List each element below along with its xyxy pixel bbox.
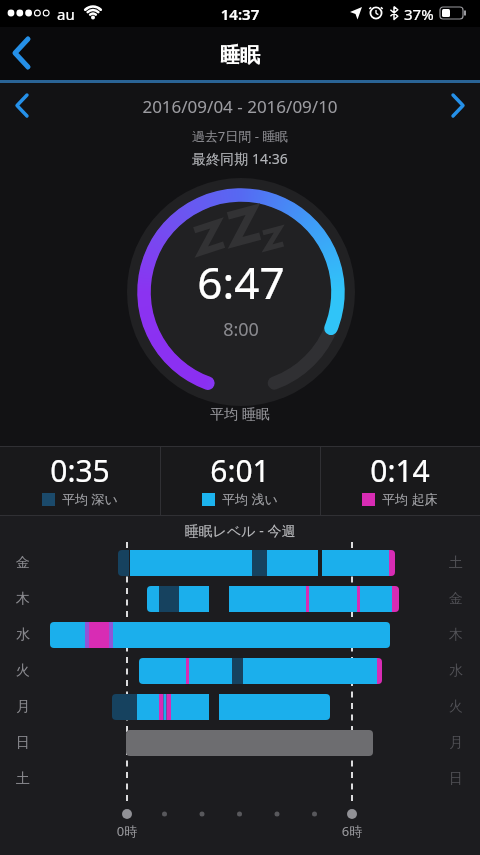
- staticText: 0時: [107, 822, 147, 840]
- button[interactable]: 6:01: [160, 446, 320, 516]
- staticText: 木: [8, 590, 38, 608]
- staticText: 月: [8, 698, 38, 716]
- staticText: 平均 深い: [62, 490, 118, 508]
- staticText: 火: [441, 698, 471, 716]
- button[interactable]: 0:35: [0, 446, 160, 516]
- staticText: 0:14: [320, 450, 480, 491]
- staticText: 6時: [332, 822, 372, 840]
- staticText: 月: [441, 734, 471, 752]
- staticText: 土: [8, 770, 38, 788]
- staticText: 過去7日間 - 睡眠: [0, 127, 480, 145]
- staticText: 14:37: [0, 4, 480, 24]
- staticText: 37%: [404, 4, 444, 24]
- staticText: 最終同期 14:36: [0, 149, 480, 168]
- button[interactable]: [442, 92, 472, 120]
- staticText: 水: [8, 626, 38, 644]
- staticText: 平均 浅い: [222, 490, 278, 508]
- staticText: 日: [441, 770, 471, 788]
- staticText: 平均 睡眠: [0, 404, 480, 423]
- staticText: 8:00: [125, 317, 357, 342]
- staticText: 平均 起床: [382, 490, 438, 508]
- staticText: 木: [441, 626, 471, 644]
- staticText: 6:01: [160, 450, 320, 491]
- button[interactable]: 0:14: [320, 446, 480, 516]
- staticText: 日: [8, 734, 38, 752]
- button[interactable]: [8, 92, 38, 120]
- staticText: 6:47: [125, 252, 357, 312]
- staticText: 睡眠レベル - 今週: [0, 521, 480, 540]
- button[interactable]: [6, 32, 40, 74]
- staticText: au: [57, 4, 87, 24]
- staticText: 火: [8, 662, 38, 680]
- staticText: 金: [8, 554, 38, 572]
- staticText: 水: [441, 662, 471, 680]
- staticText: 0:35: [0, 450, 160, 491]
- staticText: 金: [441, 590, 471, 608]
- staticText: 睡眠: [0, 43, 480, 68]
- staticText: 土: [441, 554, 471, 572]
- staticText: 2016/09/04 - 2016/09/10: [0, 95, 480, 118]
